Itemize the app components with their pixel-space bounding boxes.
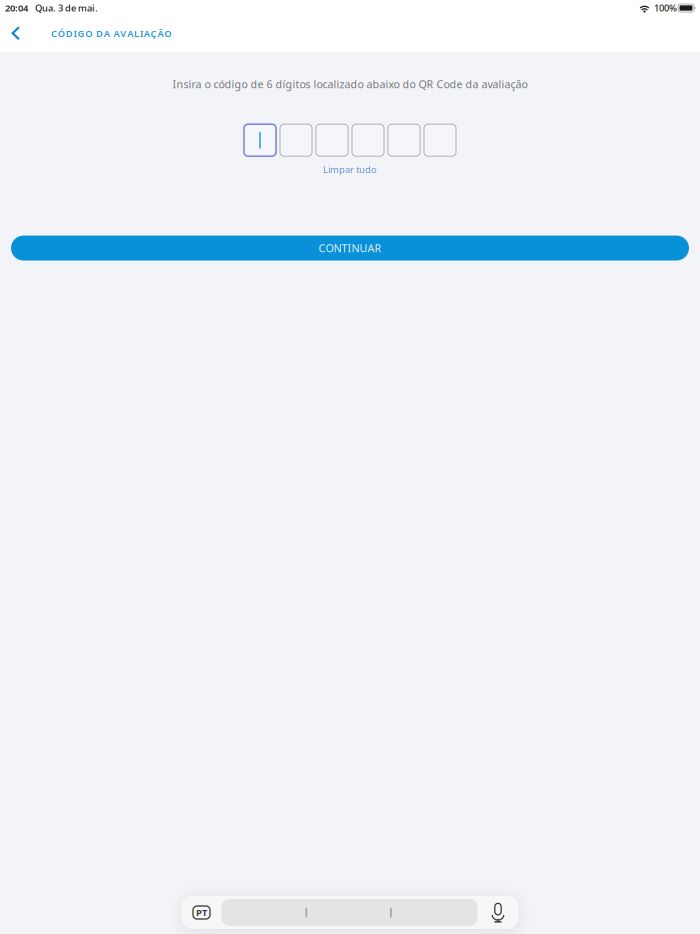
staticText: Limpar tudo [323, 163, 377, 176]
staticText: CÓDIGO DA AVALIAÇÃO [51, 27, 171, 40]
button[interactable]: Change keyboard language [181, 896, 221, 929]
staticText: CONTINUAR [318, 241, 381, 255]
button[interactable]: Limpar tudo [315, 160, 385, 179]
staticText: 100% [654, 2, 677, 14]
button[interactable]: CONTINUAR [11, 236, 689, 261]
button[interactable]: Back [0, 19, 30, 48]
staticText: Qua. 3 de mai. [35, 2, 98, 14]
button[interactable]: Dictation [477, 896, 518, 929]
staticText: 20:04 [5, 2, 28, 14]
staticText: PT [196, 906, 207, 919]
staticText: Insira o código de 6 dígitos localizado … [172, 77, 527, 91]
